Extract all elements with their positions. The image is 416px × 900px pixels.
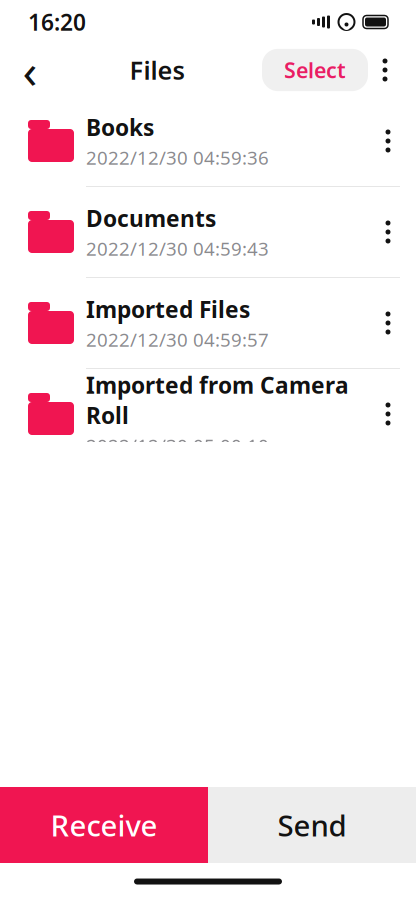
button[interactable]: Imported from Camera Roll [0,369,416,459]
button[interactable]: Select [262,49,368,91]
staticText: Files [129,53,184,87]
staticText: Books [86,112,154,142]
staticText: 16:20 [28,7,86,37]
staticText: 2022/12/30 04:59:36 [86,145,269,170]
staticText: Send [277,805,346,844]
button[interactable]: More options [368,48,402,92]
button[interactable]: Imported Files [0,278,416,368]
button[interactable]: Receive [0,787,208,863]
staticText: 2022/12/30 04:59:57 [86,327,269,352]
button[interactable]: Send [208,787,416,863]
button[interactable]: Documents [0,187,416,277]
button[interactable]: Books [0,96,416,186]
staticText: 2022/12/30 04:59:43 [86,236,269,261]
staticText: Imported from Camera Roll [86,370,349,430]
staticText: Documents [86,203,216,233]
staticText: Imported Files [86,294,250,324]
staticText: Receive [50,805,157,844]
staticText: 2022/12/30 05:00:10 [86,433,269,458]
staticText: ‹ [22,38,37,102]
staticText: Select [284,56,346,84]
button[interactable]: Back [8,48,52,92]
